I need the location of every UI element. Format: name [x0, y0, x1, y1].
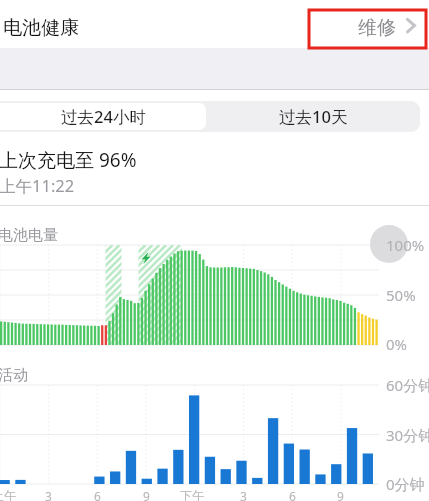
staticText: 3	[240, 488, 247, 501]
staticText: 上次充电至 96%	[0, 147, 137, 173]
button[interactable]: 维修	[350, 10, 426, 48]
staticText: 0%	[386, 334, 408, 354]
staticText: 100%	[386, 235, 425, 255]
staticText: 30分钟	[386, 425, 429, 445]
staticText: 电池健康	[3, 16, 79, 40]
staticText: 50%	[386, 285, 416, 305]
staticText: 下午	[180, 488, 204, 501]
staticText: 9	[337, 488, 344, 501]
staticText: 3	[45, 488, 52, 501]
staticText: 60分钟	[386, 375, 429, 395]
staticText: 过去10天	[279, 105, 348, 128]
staticText: 维修	[358, 16, 396, 40]
staticText: 上午11:22	[0, 174, 75, 197]
staticText: 活动	[0, 366, 28, 385]
staticText: 6	[289, 488, 296, 501]
button[interactable]: 过去10天	[206, 101, 420, 132]
staticText: 过去24小时	[61, 105, 146, 128]
staticText: 电池电量	[0, 226, 58, 245]
other: 维修	[405, 17, 419, 35]
staticText: 6	[94, 488, 101, 501]
staticText: 0分钟	[386, 474, 425, 494]
staticText: 9	[143, 488, 150, 501]
button[interactable]: 过去24小时	[0, 103, 206, 130]
staticText: 上午	[0, 488, 16, 501]
